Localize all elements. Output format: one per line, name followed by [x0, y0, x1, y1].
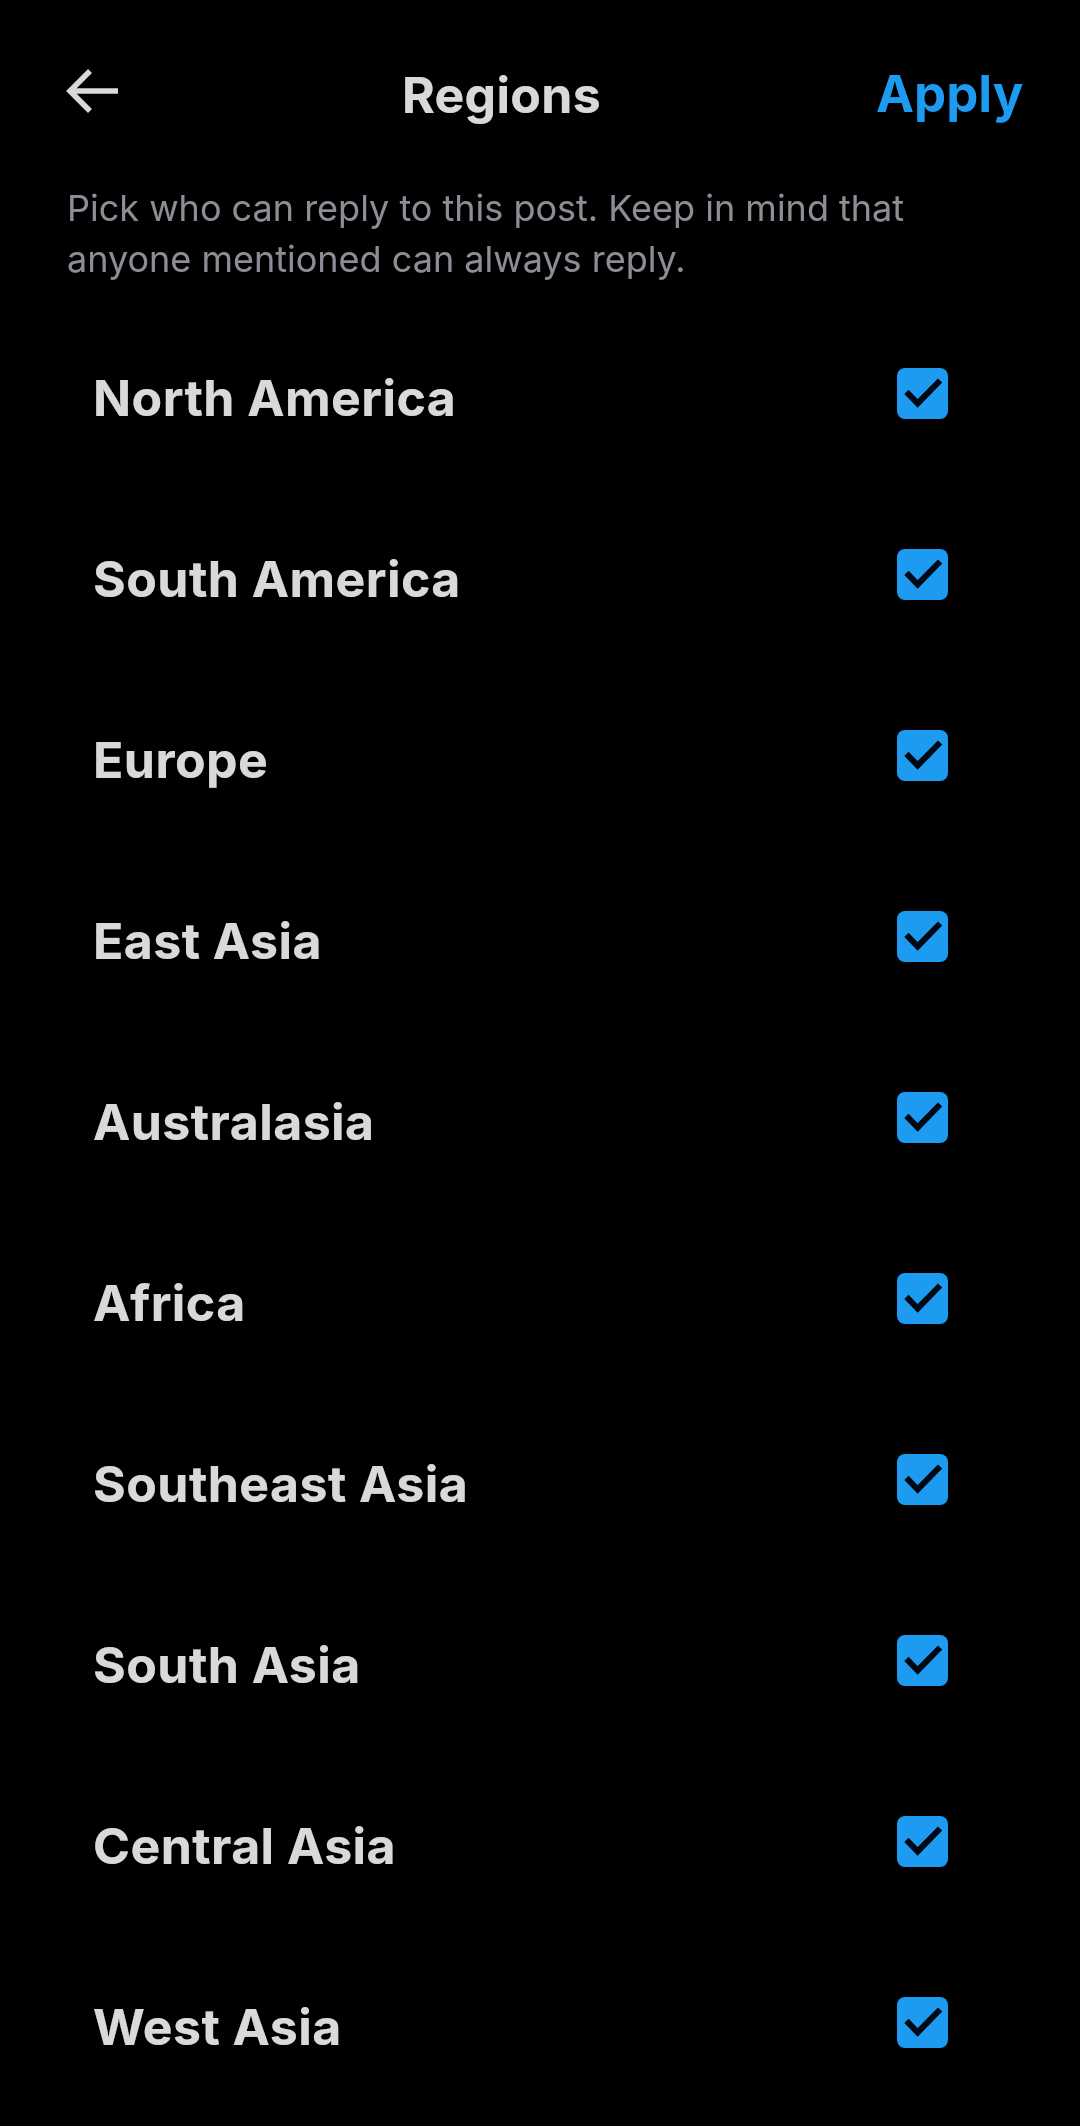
staticText: Apply	[876, 63, 1024, 125]
staticText: West Asia	[93, 1997, 342, 2057]
button[interactable]: Southeast Asia	[0, 1393, 1080, 1574]
button[interactable]: Australasia	[0, 1031, 1080, 1212]
staticText: South America	[93, 549, 461, 609]
staticText: Pick who can reply to this post. Keep in…	[67, 180, 912, 282]
button[interactable]: North America	[0, 307, 1080, 488]
staticText: North America	[93, 368, 457, 428]
staticText: East Asia	[93, 911, 322, 971]
button[interactable]: Central Asia	[0, 1755, 1080, 1936]
button[interactable]: Africa	[0, 1212, 1080, 1393]
button[interactable]: South America	[0, 488, 1080, 669]
button[interactable]: West Asia	[0, 1936, 1080, 2117]
staticText: Australasia	[93, 1092, 375, 1152]
staticText: Southeast Asia	[93, 1454, 469, 1514]
button[interactable]: East Asia	[0, 850, 1080, 1031]
staticText: Central Asia	[93, 1816, 397, 1876]
button[interactable]: Apply	[860, 47, 1040, 141]
button[interactable]: South Asia	[0, 1574, 1080, 1755]
staticText: Regions	[402, 65, 602, 125]
button[interactable]: Europe	[0, 669, 1080, 850]
staticText: South Asia	[93, 1635, 361, 1695]
button[interactable]: Back	[45, 42, 143, 140]
staticText: Europe	[93, 730, 269, 790]
staticText: Africa	[93, 1273, 246, 1333]
